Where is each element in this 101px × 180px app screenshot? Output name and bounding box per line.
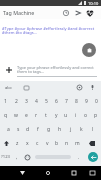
staticText: l (92, 126, 94, 133)
button[interactable]: abc (4, 84, 13, 92)
button[interactable]: . (74, 154, 84, 161)
button[interactable]: e (21, 112, 31, 119)
button[interactable]: q (0, 112, 11, 119)
button[interactable]: v (42, 140, 52, 147)
button[interactable]: Monitor heart (84, 7, 96, 19)
button[interactable]: 2 (11, 98, 21, 105)
staticText: d (26, 126, 30, 133)
staticText: . (78, 154, 80, 161)
staticText: b (55, 140, 59, 147)
button[interactable]: k (76, 126, 87, 133)
button[interactable]: s (13, 126, 23, 133)
staticText: Type your phrase effortlessly and correc… (17, 65, 94, 75)
staticText: x (26, 140, 29, 147)
button[interactable]: Shift (0, 141, 12, 146)
button[interactable]: Add (3, 64, 15, 76)
button[interactable]: 4 (31, 98, 41, 105)
staticText: q (4, 112, 8, 119)
button[interactable]: Hide keyboard (86, 167, 98, 179)
staticText: 4 (35, 98, 38, 105)
button[interactable]: 6 (51, 98, 61, 105)
staticText: i (75, 112, 77, 119)
button[interactable]: l (87, 126, 98, 133)
staticText: 9 (85, 98, 88, 105)
staticText: w (14, 112, 18, 119)
staticText: z (16, 140, 19, 147)
button[interactable]: d (23, 126, 33, 133)
button[interactable]: Recents (68, 167, 80, 179)
button[interactable]: r (31, 112, 41, 119)
staticText: r (35, 112, 38, 119)
button[interactable]: Space (32, 155, 74, 159)
button[interactable]: , (12, 154, 22, 161)
staticText: #Type #your #phrase #effortlessly #and #… (2, 26, 99, 35)
button[interactable]: 3 (21, 98, 31, 105)
button[interactable]: Emoji (22, 155, 32, 160)
button[interactable]: Voice input (88, 83, 97, 92)
button[interactable]: 8 (71, 98, 81, 105)
staticText: ?123 (1, 154, 11, 160)
button[interactable]: u (61, 112, 71, 119)
staticText: y (55, 112, 58, 119)
staticText: 0 (95, 98, 98, 105)
staticText: abc (5, 85, 12, 91)
button[interactable]: m (72, 140, 82, 147)
staticText: m (75, 140, 80, 147)
staticText: k (80, 126, 83, 133)
button[interactable]: b (52, 140, 62, 147)
button[interactable]: 7 (61, 98, 71, 105)
button[interactable]: n (62, 140, 72, 147)
button[interactable]: t (41, 112, 51, 119)
staticText: 3 (25, 98, 28, 105)
button[interactable]: x (22, 140, 32, 147)
staticText: 2 (15, 98, 18, 105)
button[interactable]: o (81, 112, 91, 119)
staticText: n (65, 140, 69, 147)
button[interactable]: History (60, 7, 72, 19)
button[interactable]: j (65, 126, 76, 133)
staticText: 7 (65, 98, 68, 105)
staticText: u (64, 112, 68, 119)
button[interactable]: Settings (75, 83, 84, 92)
button[interactable]: i (71, 112, 81, 119)
staticText: 5 (45, 98, 48, 105)
staticText: 10:10 (88, 1, 99, 6)
staticText: e (25, 112, 28, 119)
button[interactable]: 5 (41, 98, 51, 105)
staticText: , (16, 154, 18, 161)
staticText: 6 (55, 98, 58, 105)
button[interactable]: GIF (22, 84, 30, 92)
button[interactable]: y (51, 112, 61, 119)
button[interactable]: 9 (81, 98, 91, 105)
staticText: a (7, 126, 10, 133)
staticText: s (17, 126, 20, 133)
staticText: p (94, 112, 98, 119)
button[interactable]: g (43, 126, 54, 133)
staticText: v (46, 140, 49, 147)
staticText: o (84, 112, 88, 119)
button[interactable]: Home (42, 167, 54, 179)
button[interactable]: z (12, 140, 22, 147)
staticText: h (58, 126, 62, 133)
staticText: Tag Machine (3, 9, 35, 16)
button[interactable]: c (32, 140, 42, 147)
staticText: 1 (4, 98, 7, 105)
staticText: j (70, 126, 72, 133)
button[interactable]: Backspace (82, 141, 101, 146)
button[interactable]: ?123 (0, 154, 12, 160)
button[interactable]: f (33, 126, 43, 133)
staticText: 8 (75, 98, 78, 105)
button[interactable]: p (91, 112, 101, 119)
button[interactable]: w (11, 112, 21, 119)
button[interactable]: 1 (0, 98, 11, 105)
button[interactable]: 0 (91, 98, 101, 105)
button[interactable]: Camera (82, 43, 96, 57)
button[interactable]: a (3, 126, 13, 133)
button[interactable]: Back (16, 167, 28, 179)
staticText: t (45, 112, 47, 119)
button[interactable]: Enter (84, 152, 101, 162)
staticText: g (47, 126, 51, 133)
staticText: f (37, 126, 39, 133)
button[interactable]: h (54, 126, 65, 133)
button[interactable]: Send (72, 7, 84, 19)
